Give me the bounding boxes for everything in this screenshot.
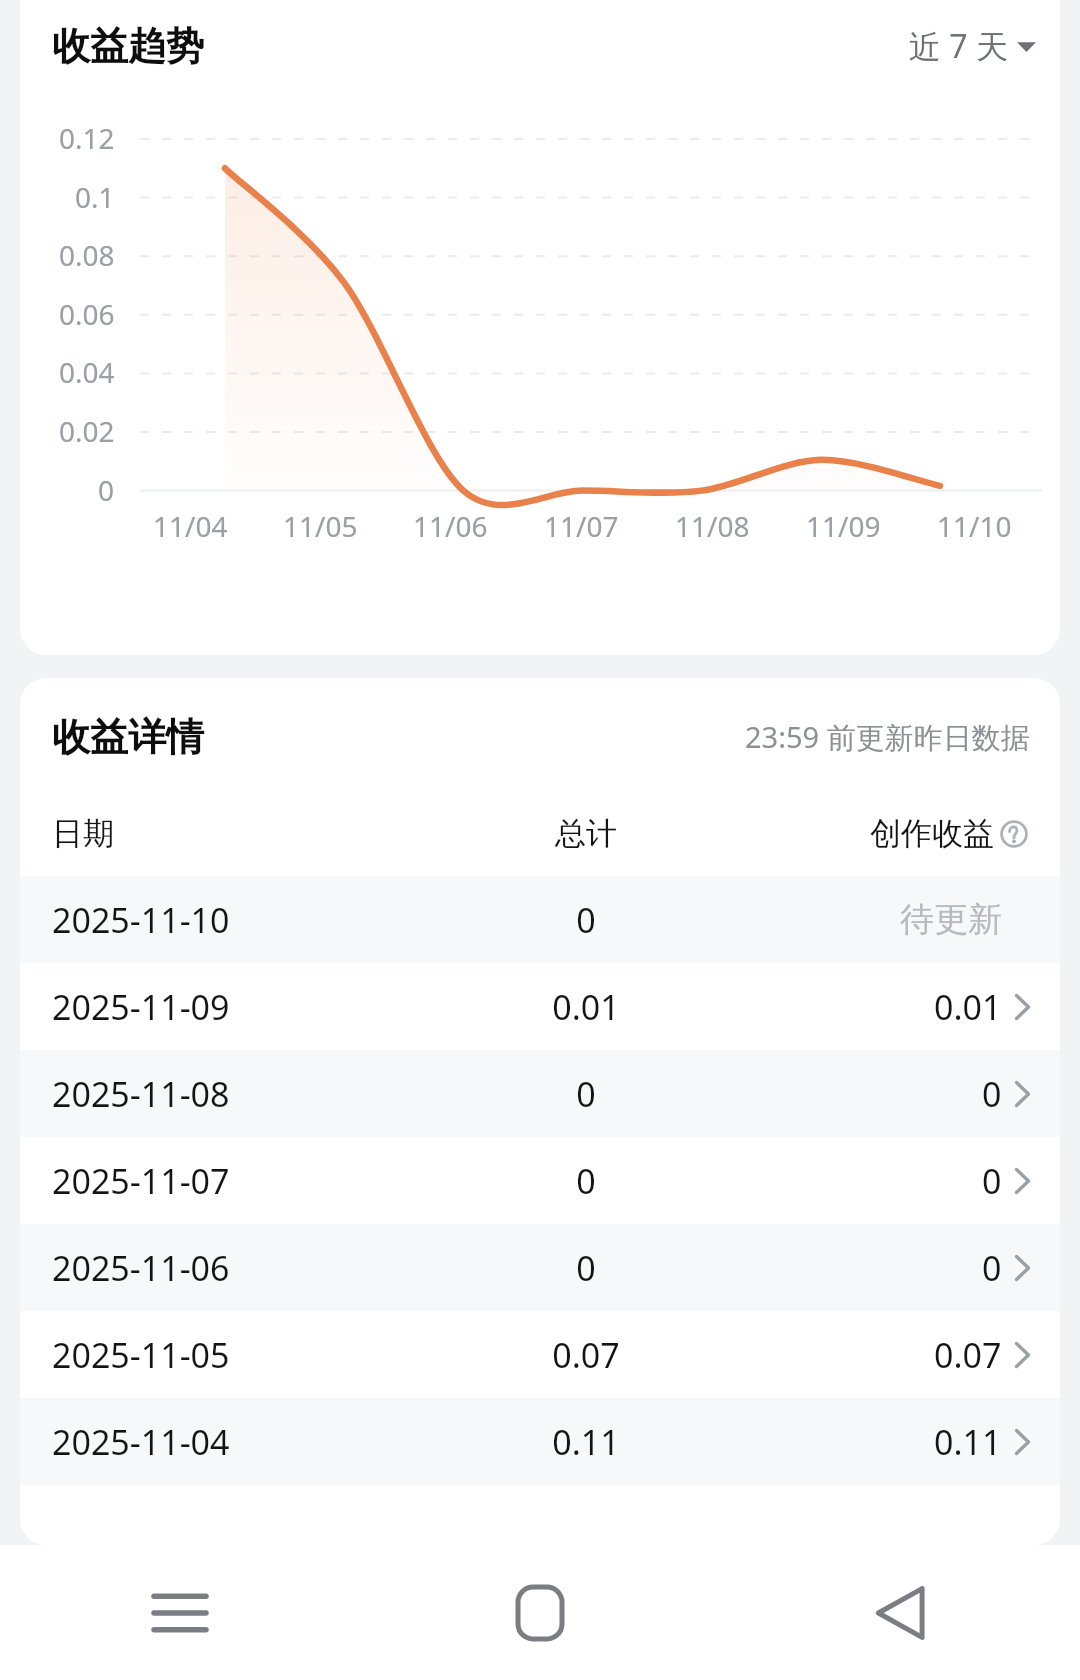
staticText: 0.02 <box>59 412 115 450</box>
button[interactable]: 2025-11-05 <box>20 1311 1060 1398</box>
staticText: 0 <box>438 897 734 943</box>
staticText: 0.06 <box>59 295 115 333</box>
staticText: 日期 <box>52 814 438 853</box>
staticText: 11/10 <box>937 507 1012 545</box>
staticText: 0.01 <box>438 984 734 1030</box>
staticText: 0.01 <box>934 984 1002 1030</box>
staticText: 0.07 <box>438 1332 734 1378</box>
button[interactable]: 2025-11-08 <box>20 1050 1060 1137</box>
staticText: 0 <box>982 1071 1002 1117</box>
staticText: 11/04 <box>153 507 228 545</box>
staticText: 11/07 <box>544 507 619 545</box>
staticText: 0 <box>982 1245 1002 1291</box>
button[interactable]: Home <box>360 1545 720 1680</box>
button[interactable]: 2025-11-10 <box>20 876 1060 963</box>
staticText: 2025-11-05 <box>52 1332 438 1378</box>
staticText: 0.04 <box>59 353 115 391</box>
staticText: 2025-11-07 <box>52 1158 438 1204</box>
button[interactable]: 2025-11-07 <box>20 1137 1060 1224</box>
staticText: 近 7 天 <box>909 24 1008 68</box>
staticText: 0.11 <box>934 1419 1002 1465</box>
button[interactable]: Back <box>720 1545 1080 1680</box>
staticText: 23:59 前更新昨日数据 <box>745 717 1030 757</box>
staticText: 2025-11-04 <box>52 1419 438 1465</box>
staticText: 2025-11-09 <box>52 984 438 1030</box>
button[interactable]: 2025-11-04 <box>20 1398 1060 1485</box>
staticText: 0.08 <box>59 236 115 274</box>
staticText: 总计 <box>438 814 734 853</box>
button[interactable]: 2025-11-09 <box>20 963 1060 1050</box>
staticText: 11/09 <box>806 507 881 545</box>
staticText: 2025-11-06 <box>52 1245 438 1291</box>
staticText: 11/06 <box>413 507 488 545</box>
staticText: 0 <box>438 1245 734 1291</box>
staticText: 0 <box>98 471 115 509</box>
staticText: 2025-11-08 <box>52 1071 438 1117</box>
staticText: 0.1 <box>75 178 115 216</box>
staticText: 待更新 <box>900 898 1002 941</box>
staticText: 0 <box>982 1158 1002 1204</box>
staticText: 11/08 <box>675 507 750 545</box>
staticText: 0.12 <box>59 119 115 157</box>
staticText: 11/05 <box>283 507 358 545</box>
staticText: 2025-11-10 <box>52 897 438 943</box>
staticText: 创作收益 <box>870 814 994 853</box>
staticText: 0.07 <box>934 1332 1002 1378</box>
staticText: 收益趋势 <box>52 22 204 70</box>
staticText: 0 <box>438 1158 734 1204</box>
staticText: 0 <box>438 1071 734 1117</box>
button[interactable]: 2025-11-06 <box>20 1224 1060 1311</box>
button[interactable]: 创作收益说明 <box>998 818 1030 850</box>
staticText: 收益详情 <box>52 713 204 761</box>
staticText: 0.11 <box>438 1419 734 1465</box>
button[interactable]: Recent apps <box>0 1545 360 1680</box>
button[interactable]: 近 7 天 <box>901 16 1044 76</box>
